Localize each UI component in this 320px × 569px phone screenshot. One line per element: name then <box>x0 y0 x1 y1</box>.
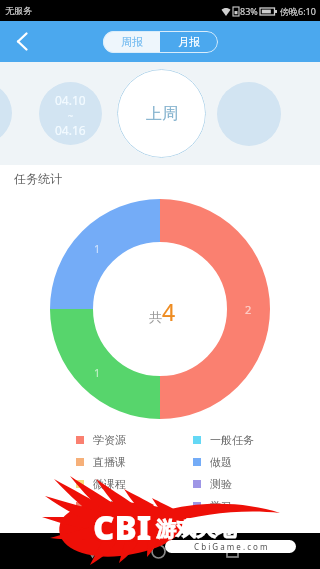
staticText: ~ <box>68 109 74 121</box>
staticText: CBI <box>91 507 150 552</box>
staticText: 2 <box>245 302 252 317</box>
staticText: CBI <box>95 503 154 548</box>
staticText: 04.10 <box>55 92 86 108</box>
button[interactable]: 微课程 <box>76 473 126 495</box>
staticText: 共 <box>149 309 162 325</box>
button[interactable]: 周报 <box>103 31 160 53</box>
staticText: 一般任务 <box>210 433 254 447</box>
staticText: 1 <box>94 365 101 380</box>
button[interactable]: 学习 <box>193 495 232 517</box>
button[interactable]: 一般任务 <box>193 429 254 451</box>
staticText: 4 <box>162 296 176 327</box>
staticText: 游戏天地 <box>156 517 236 542</box>
staticText: 测验 <box>210 477 232 491</box>
button[interactable]: Back <box>0 21 44 62</box>
staticText: 1 <box>94 241 101 256</box>
button[interactable]: 做题 <box>193 451 232 473</box>
staticText: 微课程 <box>93 477 126 491</box>
staticText: 任务统计 <box>14 171 62 186</box>
staticText: 学资源 <box>93 433 126 447</box>
staticText: 考试 <box>93 499 115 513</box>
button[interactable] <box>217 82 281 146</box>
staticText: 学习 <box>210 499 232 513</box>
staticText: 无服务 <box>5 5 32 16</box>
staticText: CBI <box>95 507 154 552</box>
staticText: 83% <box>240 5 258 17</box>
button[interactable]: 上周 <box>117 69 206 158</box>
button[interactable]: 测验 <box>193 473 232 495</box>
staticText: 直播课 <box>93 455 126 469</box>
staticText: 上周 <box>146 104 178 124</box>
button[interactable]: 04.10 <box>39 82 102 145</box>
button[interactable]: Home <box>140 533 176 569</box>
staticText: CBI <box>93 505 152 550</box>
staticText: CBI <box>91 503 150 548</box>
button[interactable]: 直播课 <box>76 451 126 473</box>
button[interactable]: Recents <box>214 533 250 569</box>
button[interactable]: 月报 <box>160 31 218 53</box>
staticText: 周报 <box>121 35 143 49</box>
staticText: 04.16 <box>55 122 86 138</box>
staticText: 做题 <box>210 455 232 469</box>
staticText: C b i G a m e . c o m <box>194 541 268 552</box>
staticText: 傍晚6:10 <box>280 5 316 17</box>
staticText: 月报 <box>178 35 200 49</box>
button[interactable]: 考试 <box>76 495 115 517</box>
button[interactable]: 学资源 <box>76 429 126 451</box>
button[interactable]: Back <box>74 533 110 569</box>
